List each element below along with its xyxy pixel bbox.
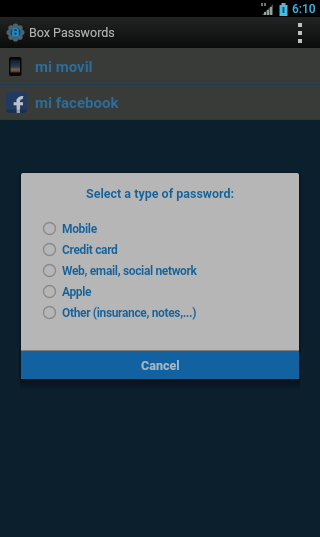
button[interactable]: Web, email, social network	[21, 260, 299, 281]
button[interactable]: Other (insurance, notes,...)	[21, 302, 299, 323]
staticText: mi facebook	[35, 94, 119, 112]
button[interactable]: mi movil	[0, 48, 320, 84]
staticText: Web, email, social network	[62, 264, 197, 278]
button[interactable]: Cancel	[21, 351, 299, 379]
button[interactable]	[279, 17, 320, 48]
button[interactable]: Mobile	[21, 218, 299, 239]
staticText: Credit card	[62, 243, 118, 257]
staticText: Cancel	[141, 358, 180, 373]
button[interactable]: mi facebook	[0, 85, 320, 119]
staticText: Mobile	[62, 222, 97, 236]
button[interactable]: Apple	[21, 281, 299, 302]
staticText: Other (insurance, notes,...)	[62, 306, 197, 320]
staticText: mi movil	[35, 58, 93, 76]
staticText: Box Passwords	[29, 25, 115, 40]
staticText: Select a type of password:	[86, 186, 235, 201]
button[interactable]: Credit card	[21, 239, 299, 260]
staticText: 6:10	[292, 2, 316, 16]
staticText: Apple	[62, 285, 92, 299]
